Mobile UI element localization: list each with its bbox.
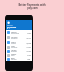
staticText: Entertain <box>11 51 17 53</box>
staticText: Income <box>11 43 16 45</box>
staticText: Transport <box>11 47 18 49</box>
staticText: Subscription <box>11 33 20 35</box>
staticText: Shopping <box>11 38 18 40</box>
button[interactable]: Uber <box>6 45 32 49</box>
staticText: -980 <box>27 58 31 60</box>
staticText: Housing <box>11 59 17 61</box>
staticText: Netflix <box>11 49 17 51</box>
staticText: -15.99 <box>26 50 31 52</box>
staticText: Coffee <box>11 53 17 55</box>
button[interactable]: Rent <box>6 57 32 61</box>
staticText: Salary <box>11 41 16 43</box>
staticText: Uber <box>11 45 15 47</box>
staticText: -5.25 <box>27 54 31 56</box>
staticText: Rent <box>11 57 15 59</box>
staticText: Food <box>11 55 15 57</box>
staticText: -42.10 <box>26 37 31 39</box>
staticText: Balance <box>7 24 13 26</box>
staticText: -9.99 <box>27 32 31 34</box>
staticText: -13.40 <box>26 46 31 48</box>
button[interactable]: Salary <box>6 40 32 45</box>
button[interactable]: Spotify <box>6 30 32 35</box>
staticText: Better Payments with <box>18 3 46 6</box>
staticText: pay.com <box>27 6 38 9</box>
button[interactable]: Netflix <box>6 49 32 53</box>
staticText: $8,420.65 <box>7 26 17 29</box>
staticText: +2,400 <box>26 42 31 44</box>
button[interactable]: Coffee <box>6 53 32 57</box>
staticText: Spotify <box>11 31 17 33</box>
button[interactable]: Amazon <box>6 35 32 40</box>
staticText: Amazon <box>11 36 18 38</box>
